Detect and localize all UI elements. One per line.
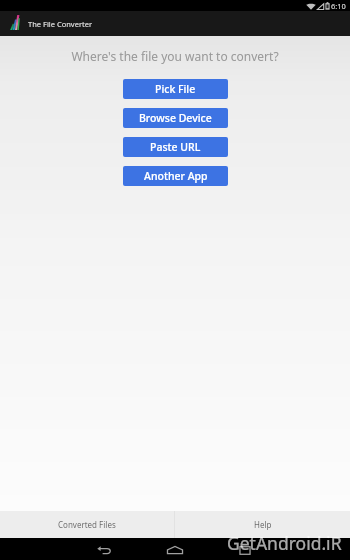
button[interactable]: Recent apps <box>233 541 257 559</box>
staticText: Help <box>254 519 272 530</box>
button[interactable]: Home <box>163 541 187 559</box>
button[interactable]: Help <box>175 511 350 538</box>
button[interactable]: Browse Device <box>123 108 228 128</box>
button[interactable]: Converted Files <box>0 511 174 538</box>
staticText: Paste URL <box>150 140 201 154</box>
staticText: Browse Device <box>139 111 212 125</box>
staticText: GetAndroid.iR <box>227 531 342 555</box>
staticText: The File Converter <box>28 19 93 29</box>
staticText: Where's the file you want to convert? <box>71 48 279 64</box>
button[interactable]: Another App <box>123 166 228 186</box>
staticText: Converted Files <box>58 519 116 530</box>
button[interactable]: Paste URL <box>123 137 228 157</box>
staticText: Another App <box>144 169 208 183</box>
staticText: 6:10 <box>331 1 346 11</box>
button[interactable]: Pick File <box>123 79 228 99</box>
staticText: Pick File <box>155 82 196 96</box>
button[interactable]: Back <box>92 541 116 559</box>
